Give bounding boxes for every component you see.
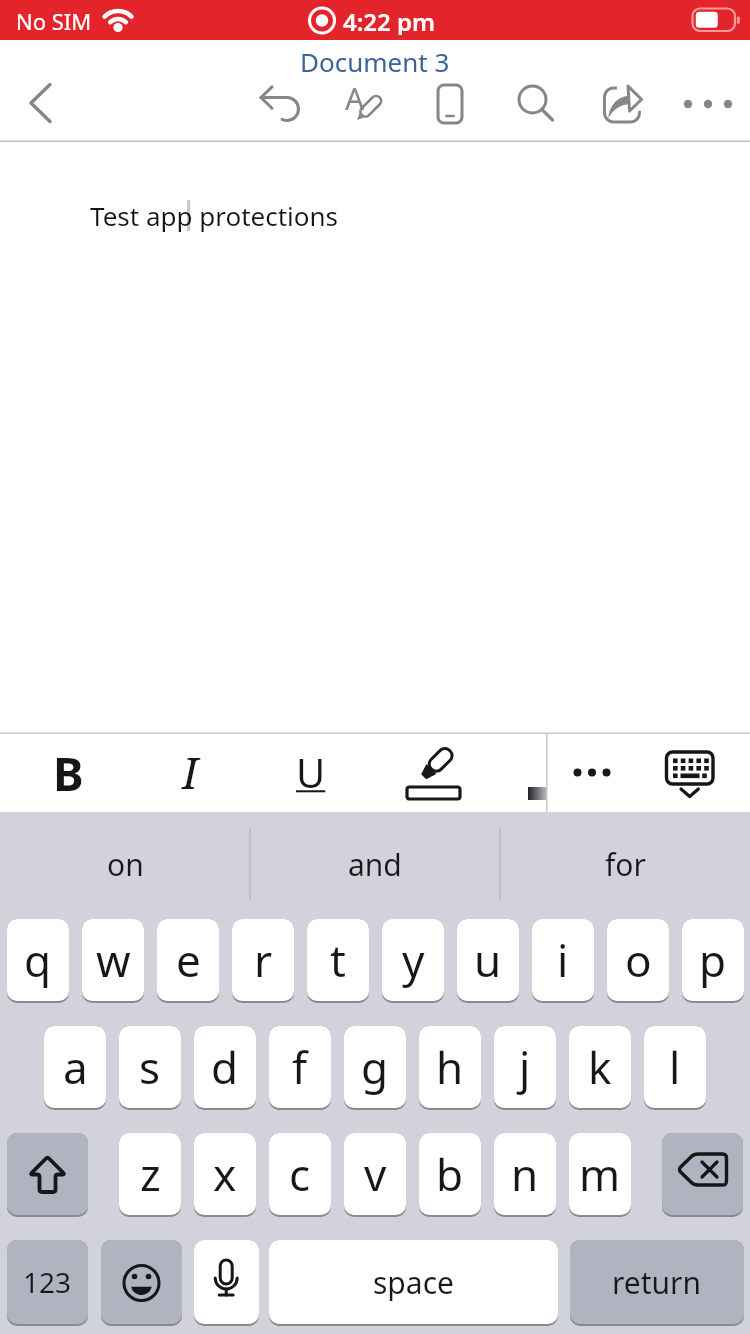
staticText: i bbox=[557, 930, 569, 990]
staticText: B bbox=[53, 742, 84, 802]
staticText: U bbox=[296, 745, 326, 799]
button[interactable]: v bbox=[344, 1133, 406, 1217]
staticText: u bbox=[474, 930, 502, 990]
staticText: c bbox=[289, 1144, 311, 1204]
staticText: a bbox=[63, 1037, 88, 1097]
button[interactable] bbox=[662, 1133, 743, 1217]
button[interactable]: d bbox=[194, 1026, 256, 1110]
button[interactable]: for bbox=[510, 830, 740, 898]
staticText: f bbox=[292, 1037, 308, 1097]
staticText: No SIM bbox=[16, 6, 92, 34]
button[interactable] bbox=[405, 740, 465, 804]
button[interactable] bbox=[510, 75, 566, 130]
button[interactable]: f bbox=[269, 1026, 331, 1110]
button[interactable]: n bbox=[494, 1133, 556, 1217]
button[interactable]: h bbox=[419, 1026, 481, 1110]
button[interactable]: I bbox=[162, 742, 218, 802]
staticText: x bbox=[213, 1144, 237, 1204]
button[interactable]: l bbox=[644, 1026, 706, 1110]
button[interactable] bbox=[340, 75, 396, 130]
staticText: Test app protections bbox=[90, 198, 339, 232]
button[interactable] bbox=[255, 75, 311, 130]
staticText: space bbox=[373, 1262, 454, 1303]
button[interactable]: y bbox=[382, 919, 444, 1003]
staticText: y bbox=[402, 930, 425, 990]
button[interactable]: r bbox=[232, 919, 294, 1003]
staticText: o bbox=[625, 930, 652, 990]
staticText: q bbox=[24, 930, 52, 990]
button[interactable]: p bbox=[682, 919, 744, 1003]
button[interactable] bbox=[7, 1133, 88, 1217]
staticText: v bbox=[364, 1144, 387, 1204]
button[interactable]: 123 bbox=[7, 1240, 88, 1326]
staticText: l bbox=[669, 1037, 681, 1097]
button[interactable]: s bbox=[119, 1026, 181, 1110]
button[interactable]: k bbox=[569, 1026, 631, 1110]
staticText: g bbox=[361, 1037, 389, 1097]
staticText: j bbox=[519, 1037, 531, 1097]
staticText: Document 3 bbox=[300, 44, 450, 74]
button[interactable]: a bbox=[44, 1026, 106, 1110]
button[interactable]: x bbox=[194, 1133, 256, 1217]
button[interactable]: u bbox=[457, 919, 519, 1003]
button[interactable]: o bbox=[607, 919, 669, 1003]
button[interactable]: space bbox=[269, 1240, 558, 1326]
staticText: b bbox=[436, 1144, 464, 1204]
button[interactable] bbox=[660, 742, 720, 802]
button[interactable]: return bbox=[570, 1240, 744, 1326]
staticText: and bbox=[348, 844, 402, 885]
button[interactable] bbox=[682, 75, 738, 130]
button[interactable]: B bbox=[40, 742, 96, 802]
button[interactable]: i bbox=[532, 919, 594, 1003]
staticText: return bbox=[612, 1262, 702, 1303]
staticText: p bbox=[699, 930, 727, 990]
staticText: 123 bbox=[23, 1263, 72, 1301]
staticText: e bbox=[176, 930, 201, 990]
staticText: m bbox=[579, 1144, 621, 1204]
staticText: A bbox=[345, 78, 365, 110]
button[interactable] bbox=[16, 75, 76, 130]
button[interactable]: U bbox=[283, 742, 339, 802]
button[interactable]: on bbox=[10, 830, 240, 898]
button[interactable]: z bbox=[119, 1133, 181, 1217]
staticText: t bbox=[330, 930, 346, 990]
staticText: for bbox=[605, 844, 646, 885]
button[interactable]: q bbox=[7, 919, 69, 1003]
staticText: k bbox=[588, 1037, 612, 1097]
staticText: w bbox=[96, 930, 131, 990]
staticText: 4:22 pm bbox=[343, 5, 436, 35]
button[interactable] bbox=[425, 75, 481, 130]
button[interactable] bbox=[194, 1240, 259, 1326]
staticText: h bbox=[436, 1037, 464, 1097]
button[interactable] bbox=[564, 742, 620, 802]
button[interactable]: t bbox=[307, 919, 369, 1003]
staticText: I bbox=[182, 742, 199, 802]
staticText: z bbox=[140, 1144, 161, 1204]
staticText: d bbox=[211, 1037, 239, 1097]
button[interactable] bbox=[101, 1240, 182, 1326]
button[interactable]: g bbox=[344, 1026, 406, 1110]
button[interactable]: and bbox=[260, 830, 490, 898]
button[interactable] bbox=[596, 75, 652, 130]
button[interactable]: m bbox=[569, 1133, 631, 1217]
staticText: n bbox=[511, 1144, 539, 1204]
button[interactable]: b bbox=[419, 1133, 481, 1217]
button[interactable]: e bbox=[157, 919, 219, 1003]
staticText: r bbox=[254, 930, 273, 990]
staticText: on bbox=[107, 844, 144, 885]
button[interactable]: w bbox=[82, 919, 144, 1003]
button[interactable]: c bbox=[269, 1133, 331, 1217]
button[interactable]: j bbox=[494, 1026, 556, 1110]
staticText: s bbox=[139, 1037, 161, 1097]
